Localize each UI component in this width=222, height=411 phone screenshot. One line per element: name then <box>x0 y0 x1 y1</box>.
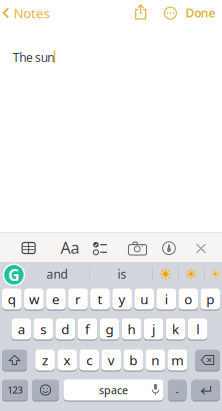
staticText: d <box>61 320 69 338</box>
staticText: p <box>206 290 214 308</box>
staticText: b <box>129 351 137 369</box>
button[interactable]: Numbers <box>2 379 28 401</box>
button[interactable]: Period <box>168 379 186 401</box>
button[interactable]: Insert table <box>20 240 37 255</box>
button[interactable]: o <box>178 288 198 310</box>
staticText: m <box>171 351 183 369</box>
button[interactable]: Checklist <box>91 241 109 256</box>
button[interactable]: Emoji <box>32 379 59 401</box>
staticText: x <box>64 351 71 369</box>
staticText: Aa <box>60 237 79 258</box>
staticText: G <box>8 264 20 285</box>
button[interactable]: w <box>24 288 44 310</box>
button[interactable]: and <box>32 262 82 286</box>
button[interactable]: Dismiss keyboard <box>194 241 208 255</box>
staticText: s <box>40 320 46 338</box>
button[interactable]: b <box>123 349 143 371</box>
staticText: c <box>86 351 92 369</box>
staticText: g <box>105 320 113 338</box>
staticText: f <box>85 320 90 338</box>
button[interactable]: m <box>167 349 187 371</box>
staticText: v <box>108 351 115 369</box>
button[interactable]: Markup <box>160 241 177 256</box>
button[interactable]: a <box>11 318 31 340</box>
staticText: 123 <box>7 384 22 396</box>
staticText: and <box>46 266 67 282</box>
button[interactable]: y <box>112 288 132 310</box>
button[interactable]: f <box>78 318 97 340</box>
button[interactable]: l <box>188 318 207 340</box>
button[interactable]: Sun with rays emoji <box>179 262 203 286</box>
button[interactable]: p <box>200 288 220 310</box>
button[interactable]: z <box>35 349 55 371</box>
button[interactable]: Brightness emoji <box>204 262 222 286</box>
staticText: i <box>165 290 168 308</box>
button[interactable]: c <box>79 349 99 371</box>
staticText: space <box>99 383 128 397</box>
button[interactable]: d <box>55 318 75 340</box>
button[interactable]: u <box>134 288 154 310</box>
staticText: Notes <box>14 4 49 22</box>
button[interactable]: Insert photo <box>127 240 147 255</box>
staticText: The sun <box>13 49 54 65</box>
button[interactable]: is <box>94 262 149 286</box>
button[interactable]: h <box>122 318 141 340</box>
button[interactable]: Share <box>133 3 148 20</box>
staticText: h <box>127 320 135 338</box>
staticText: j <box>152 320 155 338</box>
button[interactable]: k <box>166 318 185 340</box>
staticText: w <box>29 290 39 308</box>
staticText: t <box>97 290 102 308</box>
button[interactable]: x <box>57 349 77 371</box>
button[interactable]: Formatting <box>60 240 80 255</box>
button[interactable]: Sun emoji <box>153 262 177 286</box>
button[interactable]: Return <box>191 379 220 401</box>
button[interactable]: Back to Notes <box>3 5 49 21</box>
staticText: l <box>196 320 199 338</box>
staticText: y <box>119 290 126 308</box>
staticText: a <box>18 320 25 338</box>
staticText: q <box>8 290 16 308</box>
button[interactable]: r <box>68 288 88 310</box>
button[interactable]: e <box>46 288 66 310</box>
button[interactable]: q <box>2 288 22 310</box>
button[interactable]: v <box>101 349 121 371</box>
button[interactable]: j <box>144 318 163 340</box>
button[interactable]: More <box>163 6 178 21</box>
button[interactable]: Delete <box>195 349 220 371</box>
button[interactable]: Space <box>63 379 163 401</box>
button[interactable]: i <box>156 288 176 310</box>
button[interactable]: Grammarly <box>3 264 25 286</box>
button[interactable]: g <box>100 318 119 340</box>
button[interactable]: t <box>90 288 110 310</box>
button[interactable]: Done <box>185 5 215 21</box>
button[interactable]: s <box>33 318 53 340</box>
staticText: u <box>140 290 148 308</box>
button[interactable]: Shift <box>2 349 27 371</box>
staticText: o <box>184 290 192 308</box>
button[interactable]: n <box>145 349 165 371</box>
staticText: n <box>151 351 159 369</box>
staticText: z <box>42 351 48 369</box>
staticText: e <box>52 290 60 308</box>
staticText: is <box>117 266 126 282</box>
staticText: k <box>172 320 179 338</box>
staticText: r <box>75 290 81 308</box>
staticText: Done <box>185 5 215 21</box>
